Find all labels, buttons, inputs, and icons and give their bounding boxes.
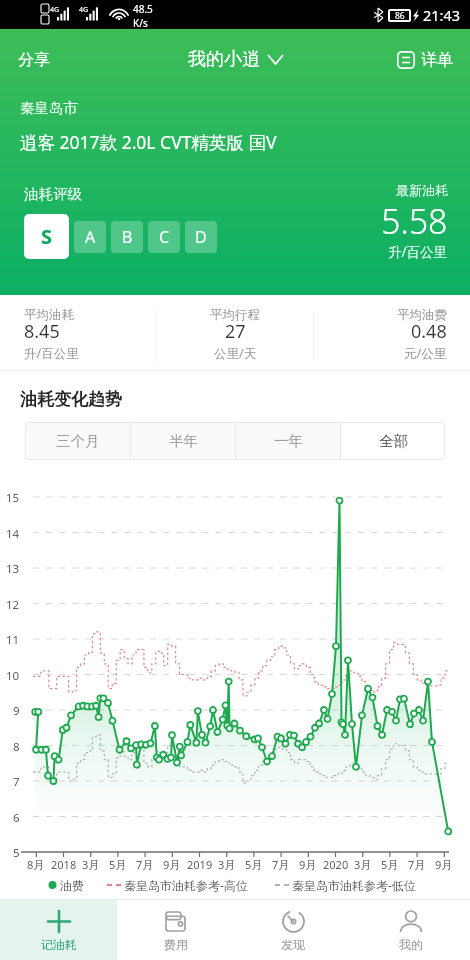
button[interactable]: 记油耗: [0, 900, 117, 960]
staticText: 7月: [272, 857, 290, 872]
staticText: 2018: [51, 857, 77, 872]
button[interactable]: 一年: [236, 422, 340, 460]
button[interactable]: 费用: [117, 900, 234, 960]
staticText: B: [122, 226, 133, 248]
staticText: 公里/天: [214, 345, 257, 362]
staticText: 油耗评级: [24, 185, 82, 203]
staticText: 分享: [18, 50, 50, 70]
staticText: 10: [6, 668, 20, 682]
button[interactable]: 我的: [352, 900, 470, 960]
staticText: 14: [6, 526, 20, 540]
staticText: A: [85, 226, 96, 248]
staticText: 8: [13, 739, 20, 753]
staticText: 86: [395, 10, 405, 22]
staticText: 秦皇岛市: [20, 99, 78, 117]
button[interactable]: 详单: [387, 42, 470, 78]
button[interactable]: D: [185, 221, 217, 253]
staticText: 三个月: [56, 432, 100, 450]
staticText: 21:43: [423, 5, 461, 25]
staticText: 11: [6, 632, 20, 646]
staticText: 2020: [323, 857, 349, 872]
button[interactable]: A: [74, 221, 106, 253]
button[interactable]: 全部: [341, 422, 445, 460]
staticText: 48.5: [133, 2, 153, 16]
staticText: D: [195, 226, 207, 248]
staticText: 3月: [82, 857, 100, 872]
button[interactable]: 分享: [0, 40, 64, 80]
staticText: 费用: [164, 937, 188, 952]
staticText: 27: [225, 319, 246, 343]
staticText: 发现: [281, 937, 305, 952]
staticText: 逍客 2017款 2.0L CVT精英版 国V: [20, 130, 277, 154]
button[interactable]: B: [111, 221, 143, 253]
staticText: 7月: [408, 857, 426, 872]
staticText: 5: [13, 845, 20, 859]
staticText: 3月: [218, 857, 236, 872]
button[interactable]: 发现: [234, 900, 352, 960]
staticText: 9月: [299, 857, 317, 872]
staticText: 5月: [109, 857, 127, 872]
staticText: 9: [13, 703, 20, 717]
staticText: 5月: [245, 857, 263, 872]
staticText: 12: [6, 597, 20, 611]
staticText: 一年: [274, 432, 303, 450]
button[interactable]: 三个月: [25, 422, 130, 460]
staticText: 0.48: [411, 319, 447, 343]
staticText: 半年: [169, 432, 198, 450]
staticText: S: [41, 223, 53, 250]
staticText: 平均行程: [210, 307, 260, 323]
staticText: 记油耗: [41, 937, 77, 952]
staticText: 7月: [136, 857, 154, 872]
staticText: 9月: [163, 857, 181, 872]
staticText: 6: [13, 810, 20, 824]
staticText: 油耗变化趋势: [20, 389, 122, 410]
staticText: 秦皇岛市油耗参考-低位: [292, 877, 416, 893]
staticText: 升/百公里: [388, 243, 448, 261]
staticText: C: [159, 226, 170, 248]
staticText: 3月: [354, 857, 372, 872]
staticText: 平均油耗: [24, 307, 74, 323]
staticText: 13: [6, 561, 20, 575]
button[interactable]: 半年: [131, 422, 235, 460]
staticText: 2019: [187, 857, 213, 872]
staticText: K/s: [133, 16, 148, 30]
staticText: 我的小逍: [188, 48, 260, 71]
staticText: 5.58: [381, 198, 448, 240]
staticText: 我的: [399, 937, 423, 952]
staticText: 平均油费: [397, 307, 447, 323]
staticText: 元/公里: [404, 345, 447, 362]
staticText: 4G: [50, 5, 60, 15]
button[interactable]: 我的小逍: [180, 42, 291, 77]
button[interactable]: C: [148, 221, 180, 253]
staticText: 全部: [379, 432, 408, 450]
staticText: 油费: [60, 878, 84, 893]
staticText: 8.45: [24, 319, 60, 343]
staticText: 升/百公里: [24, 345, 79, 362]
button[interactable]: S: [24, 214, 69, 259]
staticText: 最新油耗: [396, 182, 448, 198]
staticText: 4G: [79, 5, 89, 15]
staticText: 15: [6, 490, 20, 504]
staticText: 秦皇岛市油耗参考-高位: [124, 877, 248, 893]
staticText: 8月: [27, 857, 45, 872]
staticText: 9月: [435, 857, 453, 872]
staticText: 7: [13, 774, 20, 788]
staticText: 详单: [421, 50, 453, 70]
staticText: 5月: [381, 857, 399, 872]
